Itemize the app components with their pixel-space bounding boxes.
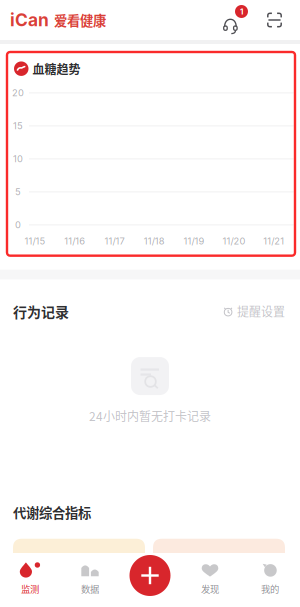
- staticText: 爱看健康: [54, 10, 106, 30]
- staticText: 发现: [201, 582, 219, 595]
- staticText: 我的: [261, 582, 279, 595]
- staticText: 11/20: [222, 235, 245, 247]
- staticText: 0: [15, 219, 21, 230]
- staticText: 11/21: [263, 235, 284, 247]
- button[interactable]: 发现: [180, 553, 240, 607]
- staticText: 监测: [21, 582, 39, 595]
- button[interactable]: 监测: [0, 553, 60, 607]
- staticText: iCan: [10, 9, 49, 30]
- button[interactable]: 在线客服: [223, 5, 248, 35]
- staticText: 行为记录: [13, 301, 69, 321]
- staticText: 5: [15, 186, 21, 197]
- staticText: 11/16: [64, 235, 85, 247]
- staticText: 提醒设置: [237, 303, 285, 320]
- button[interactable]: 添加记录: [129, 555, 170, 596]
- staticText: 血糖趋势: [32, 60, 80, 77]
- staticText: 10: [13, 153, 23, 164]
- staticText: 11/18: [144, 235, 165, 247]
- staticText: 1: [240, 7, 243, 16]
- staticText: 代谢综合指标: [13, 502, 91, 522]
- staticText: 11/17: [104, 235, 124, 247]
- button[interactable]: 我的: [240, 553, 300, 607]
- staticText: 24小时内暂无打卡记录: [89, 407, 211, 424]
- button[interactable]: 提醒设置: [223, 298, 285, 325]
- staticText: 20: [12, 87, 24, 98]
- staticText: 11/15: [24, 235, 45, 247]
- button[interactable]: 数据: [60, 553, 120, 607]
- button[interactable]: 扫一扫: [248, 5, 282, 35]
- staticText: 数据: [81, 582, 99, 595]
- staticText: 15: [13, 120, 23, 131]
- staticText: 11/19: [184, 235, 205, 247]
